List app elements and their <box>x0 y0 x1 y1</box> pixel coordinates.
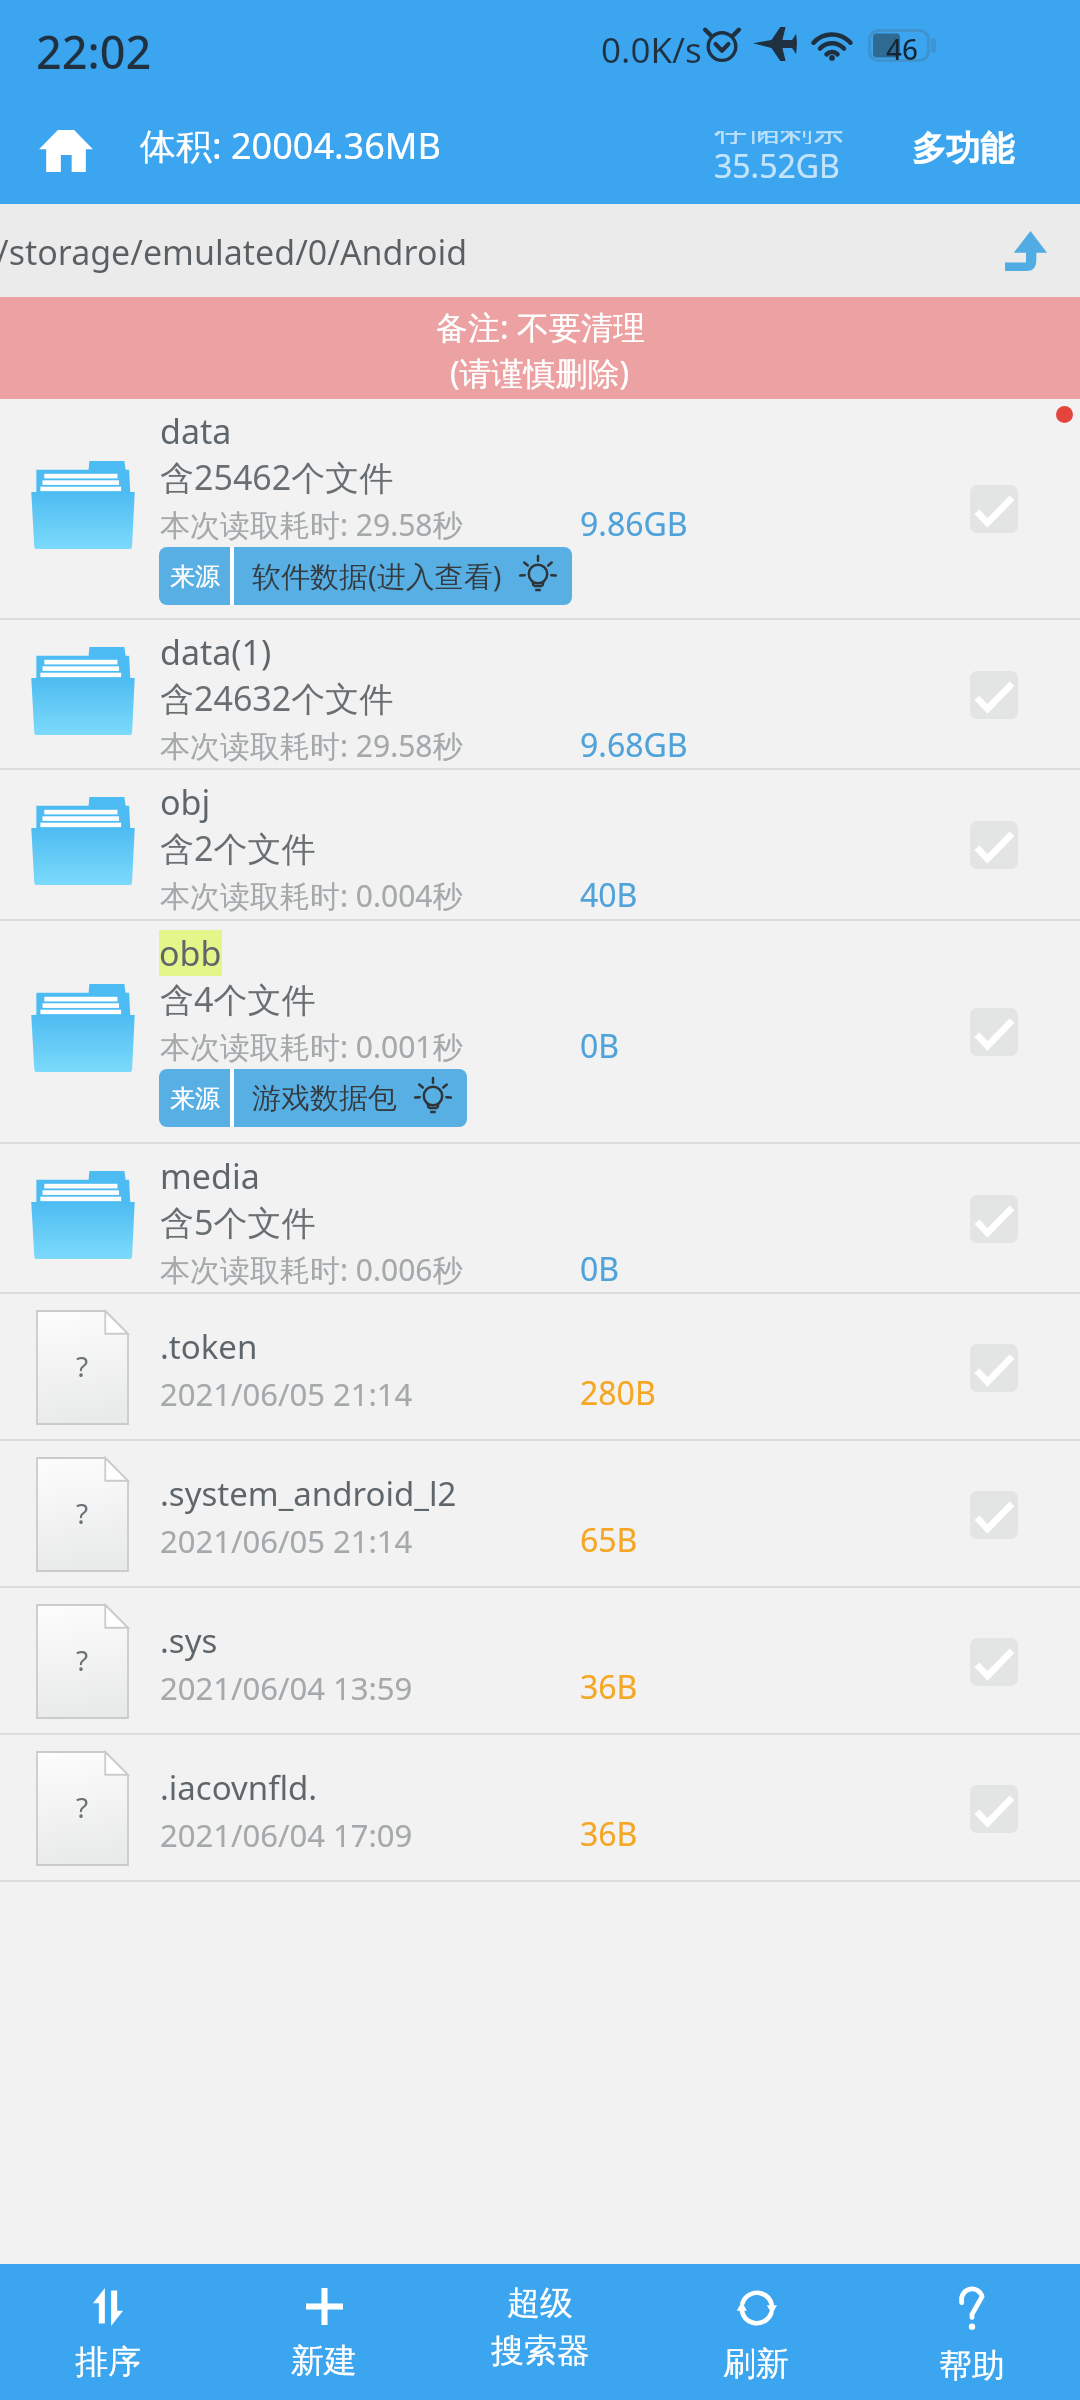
staticText: 280B <box>580 1371 656 1415</box>
button[interactable]: Select <box>970 1344 1018 1392</box>
staticText: media <box>160 1153 260 1199</box>
staticText: 2021/06/04 13:59 <box>160 1667 413 1709</box>
button[interactable]: ? <box>0 1735 1080 1882</box>
staticText: 备注: 不要清理 <box>436 305 645 349</box>
staticText: obj <box>160 779 211 825</box>
button[interactable]: 来源 <box>159 547 572 605</box>
staticText: 新建 <box>291 2340 357 2382</box>
staticText: 来源 <box>170 1083 220 1114</box>
staticText: 本次读取耗时: 29.58秒 <box>160 725 463 766</box>
staticText: 36B <box>580 1812 638 1856</box>
button[interactable]: 来源 <box>159 1069 467 1127</box>
button[interactable]: 帮助 <box>864 2264 1080 2400</box>
staticText: 46 <box>886 30 919 63</box>
staticText: (请谨慎删除) <box>450 351 630 395</box>
staticText: 65B <box>580 1518 638 1562</box>
staticText: .token <box>160 1324 258 1369</box>
button[interactable]: data <box>0 399 1080 620</box>
staticText: 本次读取耗时: 0.001秒 <box>160 1026 463 1067</box>
staticText: 含2个文件 <box>160 825 316 871</box>
button[interactable]: ? <box>0 1441 1080 1588</box>
staticText: 来源 <box>170 561 220 592</box>
staticText: data(1) <box>160 629 272 675</box>
button[interactable]: Home <box>6 95 126 204</box>
staticText: 含4个文件 <box>160 976 316 1022</box>
button[interactable]: 刷新 <box>648 2264 864 2400</box>
staticText: 36B <box>580 1665 638 1709</box>
staticText: ? <box>76 1494 89 1532</box>
staticText: data <box>160 408 232 454</box>
staticText: ? <box>76 1641 89 1679</box>
staticText: 35.52GB <box>714 144 840 188</box>
staticText: 本次读取耗时: 29.58秒 <box>160 504 463 545</box>
staticText: 存储剩余 <box>714 131 846 144</box>
staticText: 游戏数据包 <box>252 1080 397 1117</box>
staticText: .iacovnfld. <box>160 1765 318 1810</box>
staticText: 刷新 <box>723 2343 789 2385</box>
staticText: 2021/06/05 21:14 <box>160 1373 413 1415</box>
button[interactable]: 新建 <box>216 2264 432 2400</box>
button[interactable]: 多功能 <box>912 127 1014 170</box>
staticText: obb <box>159 930 222 976</box>
staticText: 搜索器 <box>491 2330 590 2372</box>
staticText: ? <box>76 1347 89 1385</box>
button[interactable]: 超级 <box>432 2264 648 2400</box>
staticText: 9.68GB <box>580 723 688 767</box>
button[interactable]: obb <box>0 921 1080 1144</box>
staticText: 本次读取耗时: 0.006秒 <box>160 1249 463 1290</box>
staticText: 软件数据(进入查看) <box>252 556 502 596</box>
button[interactable]: Select <box>970 1008 1018 1056</box>
staticText: 9.86GB <box>580 502 688 546</box>
staticText: 2021/06/04 17:09 <box>160 1814 413 1856</box>
staticText: .sys <box>160 1618 218 1663</box>
button[interactable]: Select <box>970 1785 1018 1833</box>
button[interactable]: Select <box>970 671 1018 719</box>
button[interactable]: Up one level <box>990 212 1062 290</box>
button[interactable]: ? <box>0 1588 1080 1735</box>
button[interactable]: Select <box>970 485 1018 533</box>
staticText: ? <box>76 1788 89 1826</box>
button[interactable]: Select <box>970 1638 1018 1686</box>
staticText: 帮助 <box>939 2345 1005 2387</box>
button[interactable]: obj <box>0 770 1080 921</box>
staticText: 多功能 <box>912 127 1014 170</box>
staticText: 本次读取耗时: 0.004秒 <box>160 875 463 916</box>
staticText: 超级 <box>507 2282 573 2324</box>
staticText: 含5个文件 <box>160 1199 316 1245</box>
staticText: 0B <box>580 1024 620 1068</box>
staticText: 含24632个文件 <box>160 675 394 721</box>
staticText: 2021/06/05 21:14 <box>160 1520 413 1562</box>
staticText: 0B <box>580 1247 620 1291</box>
button[interactable]: Select <box>970 1195 1018 1243</box>
staticText: 40B <box>580 873 638 917</box>
staticText: 22:02 <box>36 21 152 82</box>
button[interactable]: Select <box>970 821 1018 869</box>
button[interactable]: ? <box>0 1294 1080 1441</box>
button[interactable]: data(1) <box>0 620 1080 770</box>
staticText: /storage/emulated/0/Android <box>0 229 468 275</box>
button[interactable]: media <box>0 1144 1080 1294</box>
staticText: 排序 <box>75 2341 141 2383</box>
button[interactable]: 排序 <box>0 2264 216 2400</box>
staticText: 体积: 20004.36MB <box>140 121 441 170</box>
button[interactable]: Select <box>970 1491 1018 1539</box>
staticText: 0.0K/s <box>601 26 702 74</box>
staticText: 含25462个文件 <box>160 454 394 500</box>
staticText: .system_android_l2 <box>160 1471 457 1516</box>
